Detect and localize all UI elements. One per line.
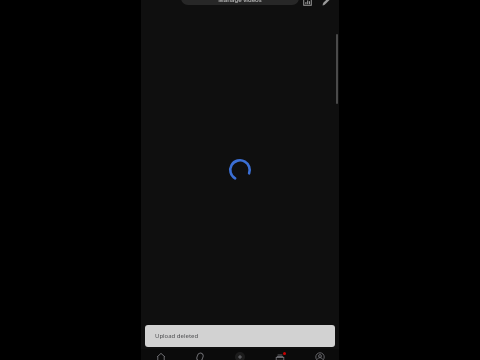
button[interactable]: Create — [219, 349, 259, 360]
button[interactable]: Shorts — [180, 349, 219, 360]
button[interactable]: Edit — [318, 0, 334, 8]
staticText: Upload deleted — [155, 332, 199, 340]
button[interactable]: Analytics — [299, 0, 315, 8]
button[interactable]: Subscriptions — [259, 349, 299, 360]
button[interactable]: Home — [141, 349, 180, 360]
button[interactable]: You — [299, 349, 339, 360]
staticText: Manage videos — [218, 0, 262, 4]
button[interactable]: Manage videos — [181, 0, 299, 5]
button[interactable]: Upload deleted — [145, 325, 335, 347]
